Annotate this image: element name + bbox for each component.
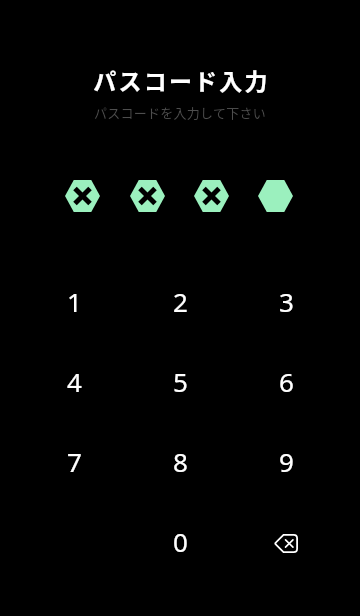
- button[interactable]: 0: [127, 501, 233, 581]
- button[interactable]: 1: [21, 261, 127, 341]
- button[interactable]: 3: [233, 261, 339, 341]
- staticText: 0: [173, 524, 188, 559]
- staticText: 1: [67, 284, 82, 319]
- staticText: 3: [279, 284, 294, 319]
- staticText: 2: [173, 284, 188, 319]
- button[interactable]: 5: [127, 341, 233, 421]
- staticText: パスコードを入力して下さい: [94, 103, 266, 122]
- other: Delete: [262, 517, 310, 565]
- staticText: 7: [67, 444, 82, 479]
- staticText: 9: [279, 444, 294, 479]
- button[interactable]: 4: [21, 341, 127, 421]
- button[interactable]: 2: [127, 261, 233, 341]
- staticText: 8: [173, 444, 188, 479]
- button[interactable]: Delete: [233, 501, 339, 581]
- staticText: 6: [279, 364, 294, 399]
- button[interactable]: 8: [127, 421, 233, 501]
- button[interactable]: 7: [21, 421, 127, 501]
- staticText: 4: [67, 364, 82, 399]
- staticText: パスコード入力: [93, 63, 270, 96]
- staticText: 5: [173, 364, 188, 399]
- button[interactable]: 6: [233, 341, 339, 421]
- button[interactable]: 9: [233, 421, 339, 501]
